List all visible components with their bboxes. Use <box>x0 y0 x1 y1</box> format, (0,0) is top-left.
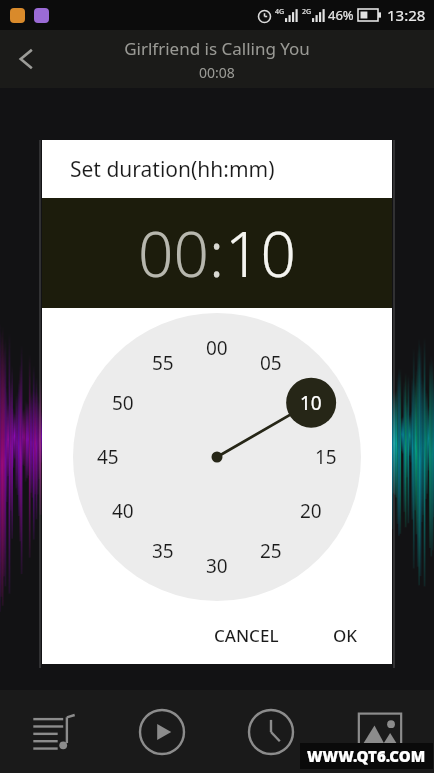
staticText: 30 <box>206 553 228 579</box>
button[interactable]: CANCEL <box>198 614 295 657</box>
staticText: 45 <box>97 444 119 470</box>
staticText: OK <box>333 624 358 647</box>
staticText: : <box>209 211 225 295</box>
staticText: 4G <box>275 7 285 17</box>
staticText: 50 <box>112 390 134 416</box>
button[interactable]: 10 <box>225 211 296 295</box>
staticText: 40 <box>112 498 134 524</box>
button[interactable]: Playlist <box>0 690 108 773</box>
staticText: 13:28 <box>387 5 426 25</box>
staticText: 00:08 <box>199 63 235 82</box>
staticText: 55 <box>152 350 174 376</box>
button[interactable]: Minute dial <box>73 313 361 601</box>
button[interactable]: Play <box>108 690 216 773</box>
staticText: 35 <box>152 538 174 564</box>
staticText: 2G <box>302 7 312 17</box>
button[interactable]: Gallery <box>325 690 434 773</box>
staticText: WWW.QT6.COM <box>307 746 426 766</box>
staticText: Set duration(hh:mm) <box>70 155 275 184</box>
staticText: CANCEL <box>214 624 279 647</box>
button[interactable]: OK <box>317 614 374 657</box>
staticText: 46% <box>328 6 354 24</box>
staticText: 05 <box>260 350 282 376</box>
button[interactable]: 00 <box>138 211 209 295</box>
staticText: 20 <box>300 498 322 524</box>
staticText: 25 <box>260 538 282 564</box>
button[interactable]: Back <box>0 33 52 85</box>
staticText: 00 <box>206 335 228 361</box>
staticText: Girlfriend is Calling You <box>124 37 310 60</box>
staticText: 10 <box>300 390 322 416</box>
button[interactable]: Timer <box>216 690 325 773</box>
staticText: 15 <box>315 444 337 470</box>
